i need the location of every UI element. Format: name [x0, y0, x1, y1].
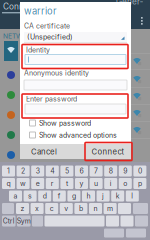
staticText: Identity: [26, 46, 50, 54]
staticText: Cancel: [31, 147, 57, 156]
staticText: m: [107, 204, 113, 213]
staticText: p: [138, 179, 142, 188]
staticText: h: [86, 192, 90, 200]
staticText: e: [36, 179, 40, 188]
staticText: General: [116, 0, 143, 16]
staticText: Show password: [39, 119, 91, 127]
staticText: 8: [109, 167, 113, 175]
staticText: q: [6, 179, 10, 188]
staticText: s: [28, 192, 32, 200]
staticText: 9: [123, 167, 127, 175]
staticText: r: [51, 179, 54, 188]
staticText: Sym: [17, 217, 31, 225]
staticText: j: [102, 192, 104, 200]
staticText: 3: [36, 167, 40, 175]
staticText: 4: [50, 167, 54, 175]
staticText: l: [131, 192, 133, 200]
staticText: 1: [7, 167, 10, 175]
staticText: 5: [65, 167, 69, 175]
staticText: Ctrl: [3, 217, 15, 225]
staticText: d: [43, 192, 47, 200]
staticText: w: [20, 179, 26, 188]
staticText: g: [72, 192, 76, 200]
staticText: NETWORKS: [3, 32, 40, 40]
button[interactable]: Cancel: [0, 0, 150, 240]
staticText: CA certificate: [24, 22, 70, 30]
staticText: v: [64, 204, 68, 213]
staticText: t: [66, 179, 68, 188]
staticText: Show advanced options: [39, 131, 117, 139]
staticText: warrior: [24, 5, 57, 17]
staticText: Enter password: [26, 95, 77, 103]
staticText: y: [79, 179, 83, 188]
staticText: Connections: [3, 1, 53, 11]
button[interactable]: Connect: [0, 0, 150, 240]
staticText: 0: [138, 167, 142, 175]
staticText: x: [35, 204, 39, 213]
staticText: (Unspecified): [27, 33, 73, 41]
staticText: Anonymous identity: [24, 69, 89, 77]
staticText: Connect: [91, 147, 124, 156]
staticText: f: [58, 192, 61, 200]
staticText: k: [116, 192, 120, 200]
staticText: a: [13, 192, 17, 200]
staticText: 7: [94, 167, 98, 175]
staticText: c: [50, 204, 54, 213]
staticText: z: [20, 204, 24, 213]
staticText: i: [110, 179, 112, 188]
staticText: o: [123, 179, 127, 188]
staticText: b: [79, 204, 83, 213]
staticText: 2: [21, 167, 25, 175]
staticText: 6: [79, 167, 83, 175]
staticText: u: [94, 179, 98, 188]
staticText: n: [93, 204, 97, 213]
